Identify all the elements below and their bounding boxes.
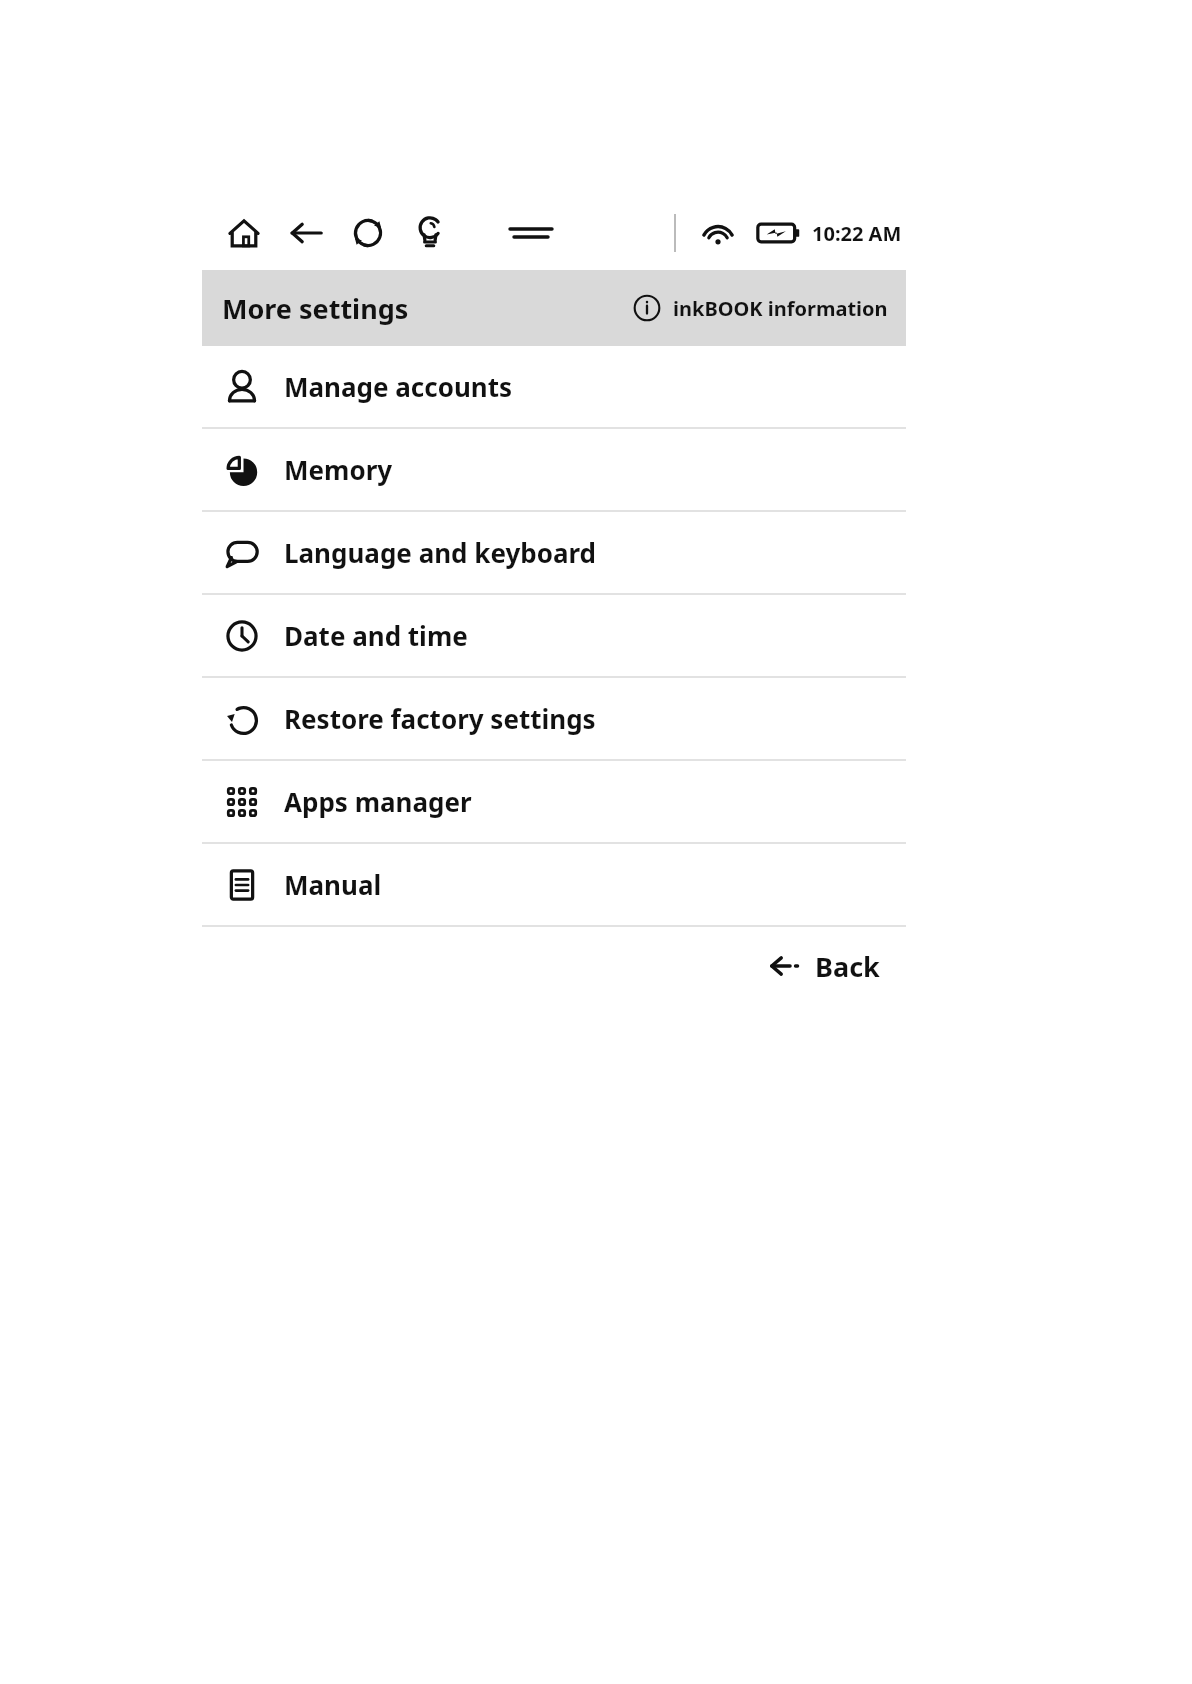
button[interactable]: Front light (408, 211, 452, 255)
button[interactable]: Language and keyboard (202, 512, 906, 593)
staticText: Date and time (284, 618, 468, 653)
button[interactable]: inkBOOK information (627, 288, 894, 328)
staticText: Manage accounts (284, 369, 513, 404)
staticText: Manual (284, 867, 382, 902)
other: Battery charging (756, 213, 802, 253)
staticText: 10:22 AM (812, 220, 902, 247)
other: Wi-Fi (698, 213, 738, 253)
button[interactable]: Back (284, 211, 328, 255)
button[interactable]: Memory (202, 429, 906, 510)
staticText: Memory (284, 452, 393, 487)
button[interactable]: Back (759, 927, 890, 1005)
button[interactable]: Refresh (346, 211, 390, 255)
staticText: Restore factory settings (284, 701, 596, 736)
button[interactable]: Manage accounts (202, 346, 906, 427)
staticText: Apps manager (284, 784, 472, 819)
button[interactable]: Home (222, 211, 266, 255)
staticText: More settings (222, 290, 409, 327)
button[interactable]: Restore factory settings (202, 678, 906, 759)
button[interactable]: Date and time (202, 595, 906, 676)
button[interactable]: Apps manager (202, 761, 906, 842)
staticText: Back (815, 948, 880, 985)
staticText: Language and keyboard (284, 535, 597, 570)
button[interactable]: Manual (202, 844, 906, 925)
button[interactable]: Drag handle (508, 216, 554, 250)
staticText: inkBOOK information (673, 295, 888, 322)
